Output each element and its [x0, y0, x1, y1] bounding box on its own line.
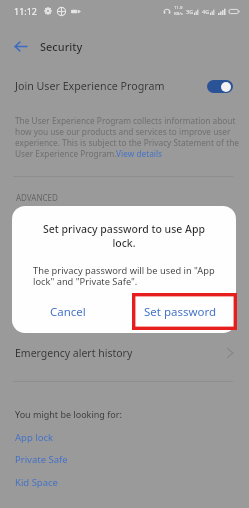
- staticText: Set privacy password to use App lock.: [32, 222, 216, 250]
- staticText: 4G: [202, 8, 210, 15]
- staticText: Set password: [144, 304, 217, 320]
- staticText: 11.0: [174, 5, 183, 11]
- button[interactable]: Back: [7, 33, 33, 59]
- button[interactable]: Cancel: [12, 297, 124, 327]
- staticText: 3G: [186, 8, 194, 15]
- button[interactable]: Kid Space: [15, 476, 58, 489]
- button[interactable]: Set password: [124, 297, 236, 327]
- button[interactable]: Private Safe: [15, 453, 68, 466]
- button[interactable]: Join User Experience Program: [0, 70, 249, 102]
- staticText: Join User Experience Program: [15, 79, 165, 94]
- staticText: KB/s: [174, 11, 183, 17]
- staticText: ADVANCED: [16, 192, 58, 203]
- staticText: The User Experience Program collects inf…: [15, 115, 239, 159]
- button[interactable]: Emergency alert history: [0, 336, 249, 370]
- staticText: The privacy password will be used in "Ap…: [33, 264, 218, 287]
- staticText: Security: [40, 39, 83, 54]
- staticText: 11:12: [14, 5, 38, 17]
- staticText: Emergency alert history: [15, 346, 133, 360]
- button[interactable]: App lock: [15, 431, 54, 444]
- staticText: Cancel: [50, 304, 86, 320]
- staticText: You might be looking for:: [15, 408, 122, 420]
